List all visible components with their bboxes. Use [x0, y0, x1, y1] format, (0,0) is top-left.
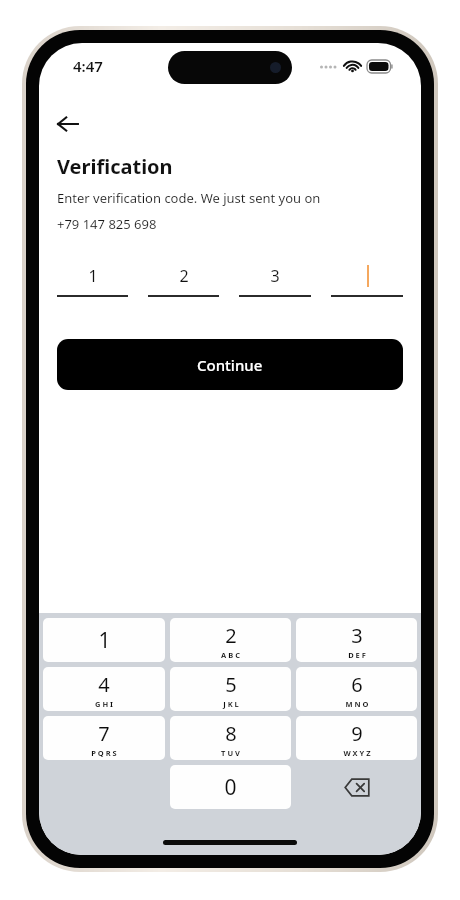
staticText: P Q R S: [91, 748, 117, 758]
staticText: 9: [351, 720, 363, 747]
staticText: Verification: [57, 153, 173, 180]
staticText: 2: [179, 265, 189, 287]
button[interactable]: 0: [170, 765, 291, 809]
staticText: 4: [98, 671, 110, 698]
button[interactable]: 2: [170, 618, 291, 662]
button[interactable]: [331, 263, 403, 297]
button[interactable]: 7: [43, 716, 165, 760]
staticText: 1: [88, 265, 98, 287]
staticText: +79 147 825 698: [57, 215, 157, 233]
staticText: G H I: [95, 699, 113, 709]
button[interactable]: 1: [57, 263, 128, 297]
button[interactable]: 9: [296, 716, 417, 760]
staticText: 1: [98, 626, 111, 655]
staticText: A B C: [221, 650, 240, 660]
staticText: 2: [225, 622, 237, 649]
staticText: W X Y Z: [343, 748, 371, 758]
staticText: 0: [224, 773, 237, 802]
button[interactable]: Back: [57, 107, 91, 141]
staticText: 6: [351, 671, 363, 698]
staticText: 8: [225, 720, 237, 747]
button[interactable]: Backspace: [296, 765, 417, 809]
button[interactable]: 4: [43, 667, 165, 711]
button[interactable]: 2: [148, 263, 219, 297]
staticText: J K L: [223, 699, 239, 709]
staticText: 5: [225, 671, 237, 698]
staticText: M N O: [345, 699, 369, 709]
button[interactable]: 5: [170, 667, 291, 711]
staticText: Continue: [197, 355, 263, 375]
button[interactable]: Continue: [57, 339, 403, 390]
button[interactable]: 3: [296, 618, 417, 662]
staticText: T U V: [221, 748, 240, 758]
staticText: 4:47: [73, 56, 103, 76]
button[interactable]: 1: [43, 618, 165, 662]
staticText: 3: [270, 265, 280, 287]
staticText: 7: [98, 720, 110, 747]
staticText: Enter verification code. We just sent yo…: [57, 189, 321, 207]
button[interactable]: 8: [170, 716, 291, 760]
button[interactable]: 3: [239, 263, 311, 297]
staticText: D E F: [348, 650, 366, 660]
staticText: 3: [351, 622, 363, 649]
button[interactable]: 6: [296, 667, 417, 711]
